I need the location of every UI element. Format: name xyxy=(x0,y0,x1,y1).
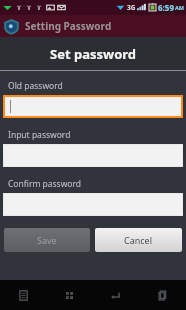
staticText: Cancel xyxy=(124,234,153,246)
staticText: Confirm password xyxy=(8,178,82,190)
staticText: Save xyxy=(37,234,57,246)
button[interactable]: Menu xyxy=(0,280,46,310)
staticText: Input password xyxy=(8,129,71,141)
staticText: 6:59 xyxy=(158,2,174,13)
button[interactable]: Save xyxy=(4,228,90,252)
staticText: Set password xyxy=(50,45,137,63)
staticText: Setting Password xyxy=(25,19,112,33)
button[interactable]: Cancel xyxy=(95,228,182,252)
staticText: AM xyxy=(175,4,184,11)
button[interactable] xyxy=(5,97,181,116)
staticText: Old password xyxy=(8,80,63,92)
staticText: 3G xyxy=(127,3,136,12)
button[interactable]: Apps xyxy=(46,280,92,310)
button[interactable]: Recents xyxy=(139,280,186,310)
button[interactable]: Back xyxy=(92,280,139,310)
